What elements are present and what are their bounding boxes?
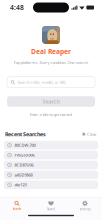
staticText: Recent Searches	[5, 131, 46, 138]
staticText: Search a title, model, or SKU	[17, 80, 66, 85]
button[interactable]: a4GD9868	[4, 171, 98, 179]
staticText: Search	[42, 98, 59, 105]
staticText: Deal Reaper	[31, 47, 71, 56]
staticText: abc123	[14, 182, 26, 187]
staticText: 80CDW-700	[14, 142, 35, 148]
button[interactable]: Search	[0, 201, 34, 211]
staticText: Top platforms. Every condition. One sear…	[13, 60, 88, 65]
staticText: Search	[12, 207, 21, 211]
button[interactable]: Search	[7, 96, 95, 107]
button[interactable]: 80CDW-700	[4, 141, 98, 149]
staticText: 4:48	[10, 3, 24, 12]
staticText: Settings	[79, 207, 90, 211]
button[interactable]: Saved	[34, 201, 68, 211]
button[interactable]: abc123	[4, 180, 98, 189]
button[interactable]: Clear	[82, 131, 97, 137]
staticText: Saved	[47, 207, 55, 211]
staticText: a4GD9868	[14, 172, 32, 177]
staticText: FVSG59-006	[14, 152, 34, 158]
button[interactable]: 8CD87U06	[4, 161, 98, 169]
staticText: Enter a title to get started.	[29, 112, 72, 117]
staticText: Clear	[87, 131, 97, 137]
button[interactable]: FVSG59-006	[4, 151, 98, 159]
staticText: 8CD87U06	[14, 162, 33, 168]
button[interactable]: Settings	[68, 200, 102, 211]
